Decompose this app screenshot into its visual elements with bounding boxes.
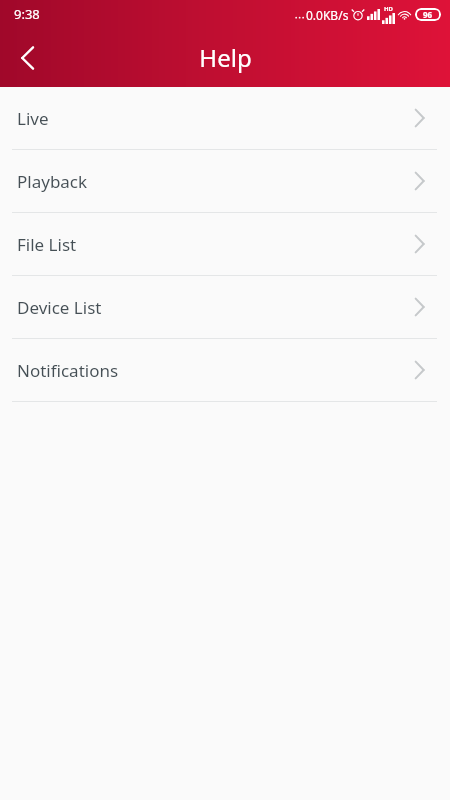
button[interactable]: Notifications: [0, 339, 450, 402]
button[interactable]: Device List: [0, 276, 450, 339]
staticText: Live: [17, 107, 414, 130]
staticText: HD: [384, 5, 393, 13]
staticText: Help: [199, 41, 252, 74]
staticText: File List: [17, 233, 414, 256]
staticText: 0.0KB/s: [306, 7, 349, 23]
staticText: Playback: [17, 170, 414, 193]
staticText: Device List: [17, 296, 414, 319]
button[interactable]: Live: [0, 87, 450, 150]
button[interactable]: File List: [0, 213, 450, 276]
staticText: Notifications: [17, 359, 414, 382]
button[interactable]: Playback: [0, 150, 450, 213]
staticText: 96: [423, 9, 433, 20]
button[interactable]: Back: [0, 30, 56, 86]
staticText: 9:38: [14, 5, 40, 23]
